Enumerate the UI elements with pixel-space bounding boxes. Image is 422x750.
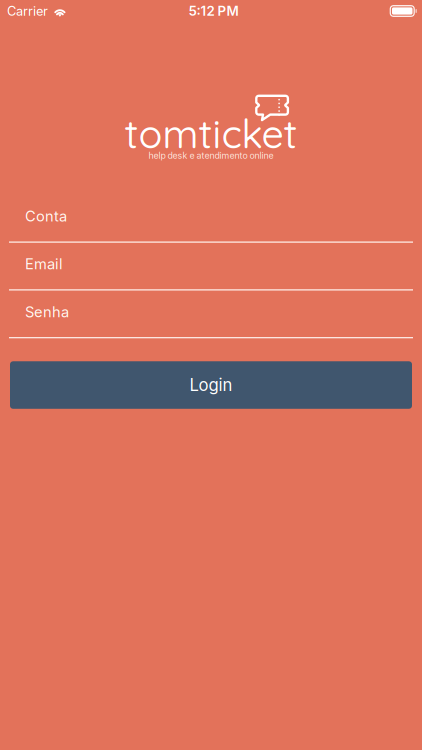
staticText: tomticket: [124, 109, 297, 158]
staticText: 5:12 PM: [188, 3, 238, 19]
staticText: help desk e atendimento online: [148, 150, 273, 161]
staticText: Senha: [25, 303, 69, 321]
staticText: Carrier: [7, 3, 48, 19]
button[interactable]: Login: [10, 361, 412, 409]
staticText: Login: [189, 375, 232, 395]
staticText: Email: [25, 255, 63, 273]
staticText: Conta: [25, 207, 67, 225]
